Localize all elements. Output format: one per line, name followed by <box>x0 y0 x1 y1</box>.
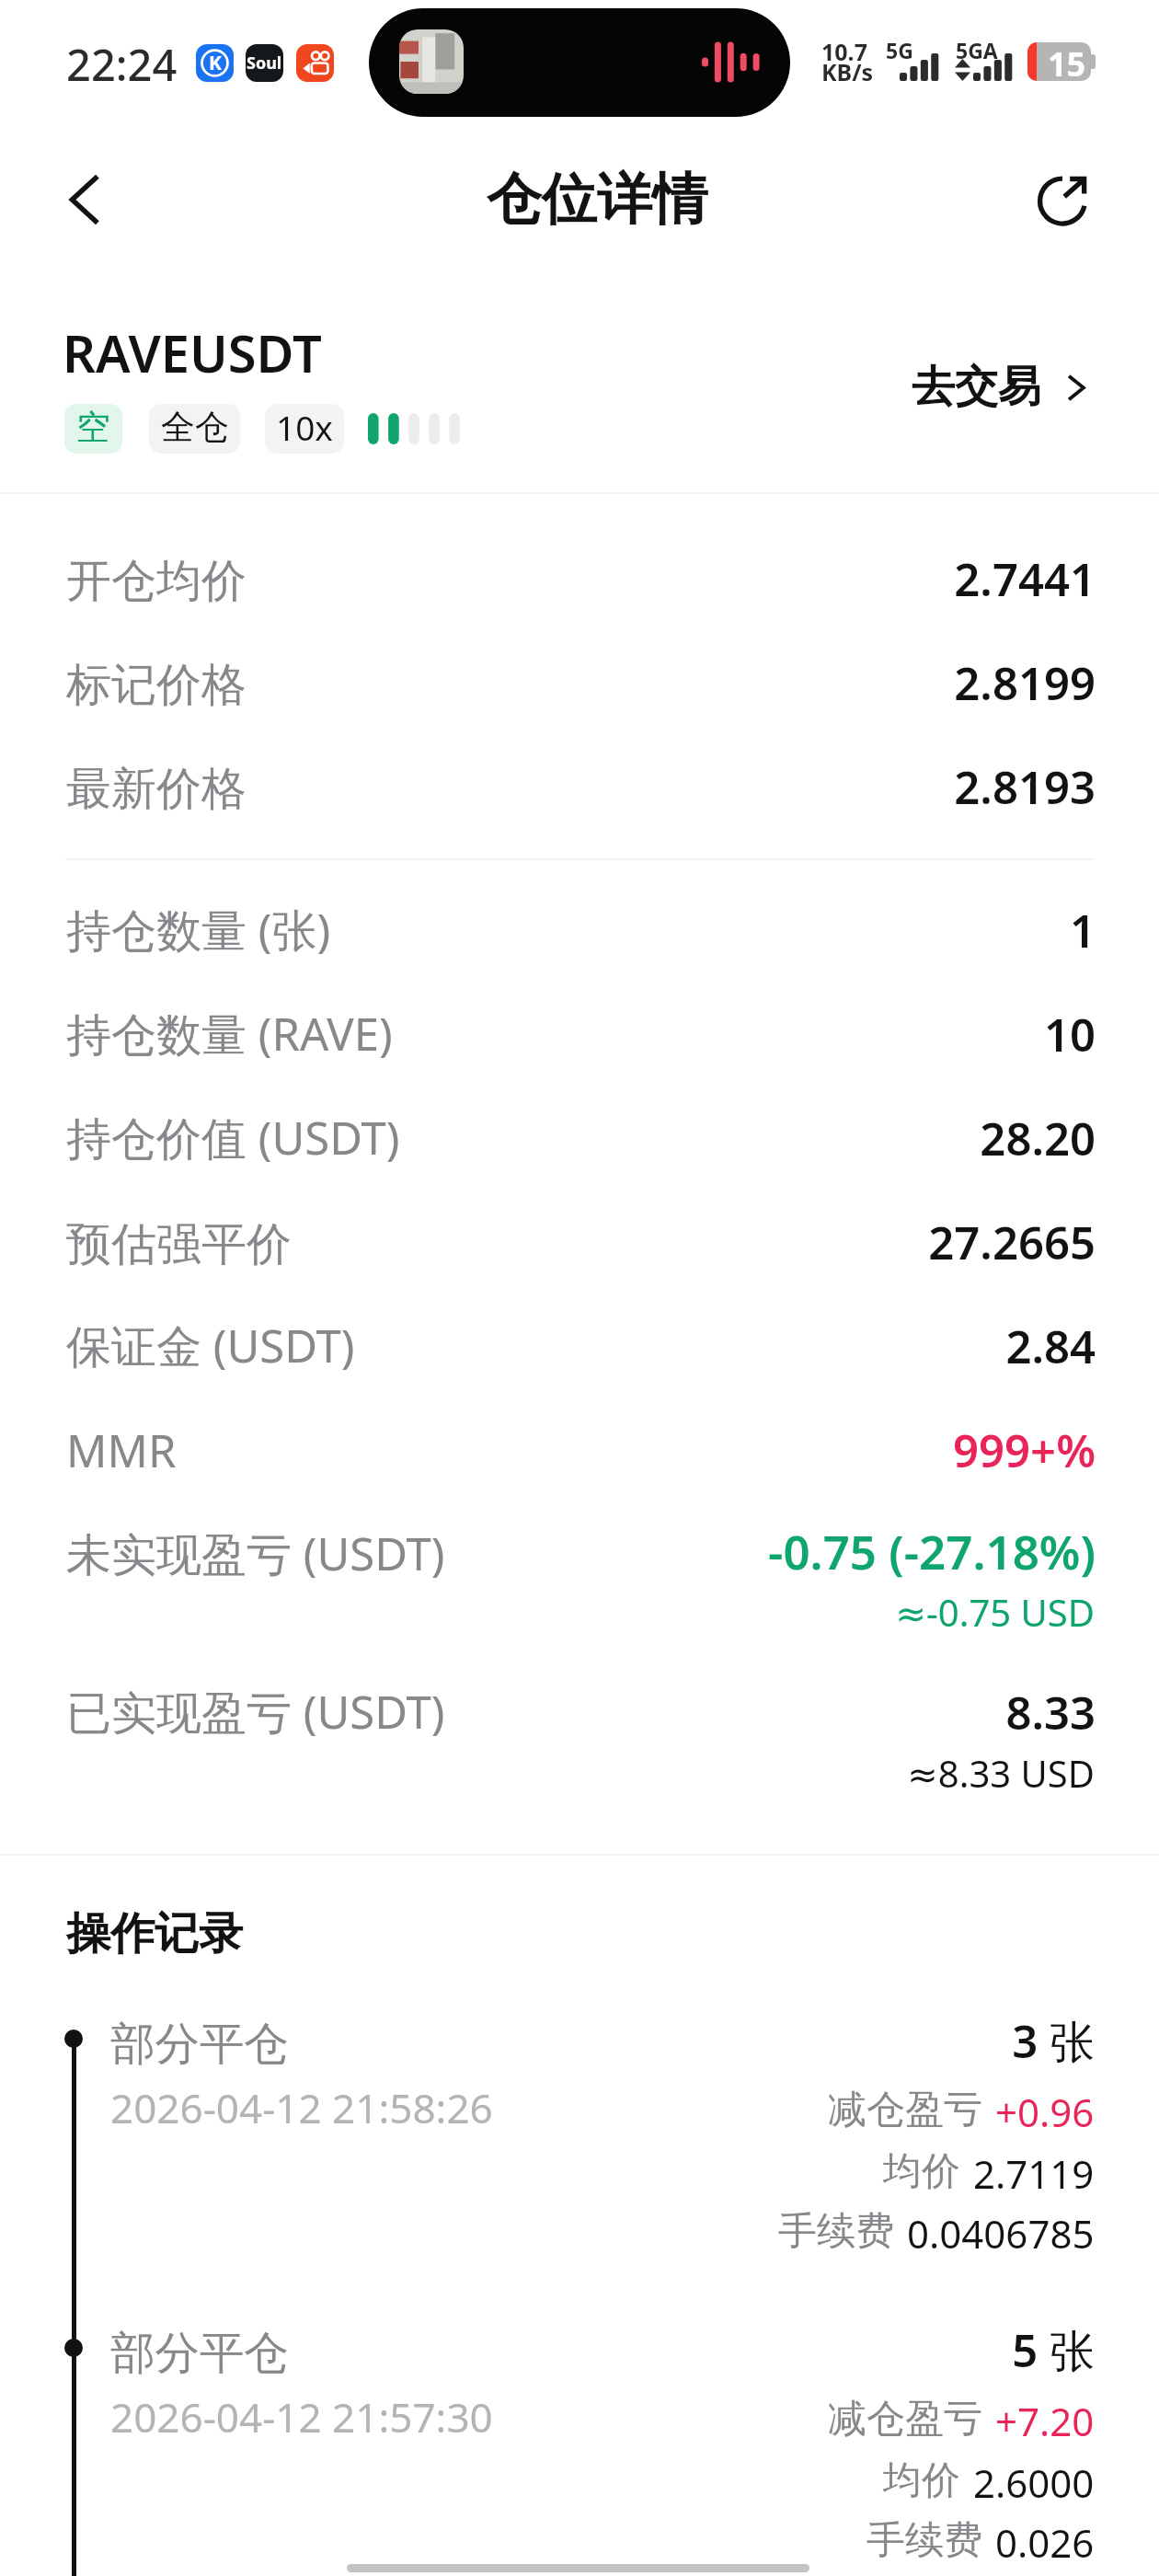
staticText: 保证金 (USDT) <box>66 1315 355 1376</box>
staticText: 5G <box>886 36 913 64</box>
staticText: RAVEUSDT <box>63 317 322 387</box>
staticText: 2026-04-12 21:57:30 <box>110 2389 493 2444</box>
staticText: 5GA <box>956 36 998 64</box>
staticText: 8.33 <box>0 1682 1096 1743</box>
staticText: 15 <box>1048 42 1086 80</box>
staticText: 2026-04-12 21:58:26 <box>110 2080 493 2135</box>
staticText: ≈8.33 USD <box>0 1748 1095 1798</box>
staticText: 全仓 <box>161 406 229 449</box>
staticText: 空 <box>76 406 110 449</box>
staticText: 999+% <box>0 1420 1096 1481</box>
staticText: 0.026 <box>995 2516 1095 2569</box>
staticText: +0.96 <box>995 2086 1095 2138</box>
button[interactable]: Back <box>42 151 140 248</box>
staticText: 手续费 <box>778 2207 894 2256</box>
staticText: 0.0406785 <box>907 2207 1095 2260</box>
staticText: 10x <box>276 404 333 450</box>
button[interactable]: 10x <box>265 404 344 454</box>
staticText: 10 <box>0 1004 1096 1065</box>
staticText: 标记价格 <box>66 657 247 714</box>
staticText: 2.8193 <box>0 756 1096 818</box>
staticText: 均价 <box>883 2147 960 2196</box>
staticText: 已实现盈亏 (USDT) <box>66 1681 445 1742</box>
staticText: 未实现盈亏 (USDT) <box>66 1523 445 1584</box>
staticText: 仓位详情 <box>487 165 707 235</box>
staticText: 开仓均价 <box>66 553 247 610</box>
staticText: 2.84 <box>0 1316 1096 1377</box>
staticText: 持仓价值 (USDT) <box>66 1107 400 1168</box>
staticText: 减仓盈亏 <box>828 2395 982 2444</box>
staticText: +7.20 <box>995 2395 1095 2447</box>
button[interactable] <box>897 348 1099 423</box>
staticText: 1 <box>0 900 1096 961</box>
staticText: 持仓数量 (张) <box>66 899 331 960</box>
staticText: 部分平仓 <box>110 2016 289 2072</box>
staticText: 2.7119 <box>973 2147 1095 2200</box>
staticText: 部分平仓 <box>110 2325 289 2381</box>
staticText: 5 张 <box>0 2319 1095 2381</box>
staticText: 持仓数量 (RAVE) <box>66 1003 393 1064</box>
staticText: K <box>209 50 222 76</box>
staticText: 2.8199 <box>0 652 1096 714</box>
staticText: 减仓盈亏 <box>828 2086 982 2134</box>
button[interactable]: 空 <box>64 404 122 454</box>
button[interactable]: Share <box>1023 158 1102 237</box>
staticText: 27.2665 <box>0 1212 1096 1273</box>
staticText: 10.7 <box>821 36 867 67</box>
button[interactable]: 全仓 <box>149 404 240 454</box>
staticText: 预估强平价 <box>66 1216 292 1273</box>
staticText: 28.20 <box>0 1108 1096 1169</box>
staticText: 3 张 <box>0 2010 1095 2072</box>
staticText: ≈-0.75 USD <box>0 1587 1095 1637</box>
staticText: 22:24 <box>66 35 178 94</box>
staticText: 均价 <box>883 2456 960 2505</box>
staticText: 操作记录 <box>66 1906 243 1961</box>
staticText: 最新价格 <box>66 761 247 818</box>
staticText: -0.75 (-27.18%) <box>0 1519 1096 1582</box>
staticText: 去交易 <box>912 360 1041 414</box>
staticText: 手续费 <box>866 2516 982 2565</box>
staticText: Soul <box>247 52 282 75</box>
staticText: 2.7441 <box>0 548 1096 610</box>
staticText: MMR <box>66 1420 177 1481</box>
staticText: 2.6000 <box>973 2456 1095 2509</box>
staticText: KB/s <box>821 56 874 87</box>
